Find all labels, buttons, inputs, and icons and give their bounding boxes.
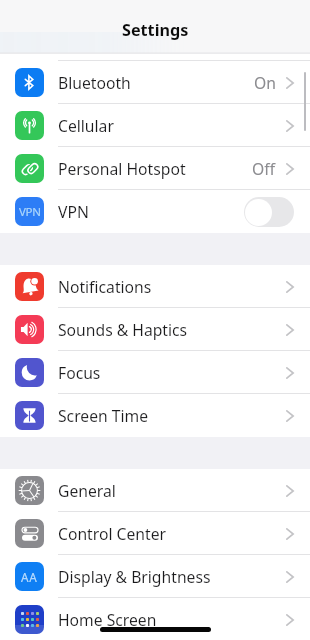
staticText: Settings (122, 19, 189, 41)
button[interactable]: Sounds & Haptics (0, 308, 310, 351)
staticText: Notifications (58, 276, 152, 297)
button[interactable]: VPN (0, 190, 310, 233)
staticText: Home Screen (58, 609, 157, 630)
button[interactable]: General (0, 469, 310, 512)
staticText: Cellular (58, 115, 114, 136)
button[interactable]: AA (0, 555, 310, 598)
staticText: Display & Brightness (58, 566, 211, 587)
button[interactable]: Cellular (0, 104, 310, 147)
staticText: Control Center (58, 523, 166, 544)
staticText: Bluetooth (58, 72, 131, 93)
staticText: VPN (19, 204, 41, 220)
staticText: VPN (58, 201, 89, 222)
button[interactable]: Screen Time (0, 394, 310, 437)
staticText: Off (252, 158, 276, 179)
button[interactable]: Home Screen (0, 598, 310, 640)
staticText: On (254, 72, 276, 93)
staticText: Focus (58, 362, 101, 383)
staticText: Screen Time (58, 405, 149, 426)
staticText: Personal Hotspot (58, 158, 186, 179)
staticText: Sounds & Haptics (58, 319, 188, 340)
staticText: AA (21, 569, 38, 585)
button[interactable]: Focus (0, 351, 310, 394)
button[interactable]: Bluetooth (0, 61, 310, 104)
button[interactable]: Notifications (0, 265, 310, 308)
button[interactable]: VPN toggle (244, 197, 294, 227)
button[interactable]: Control Center (0, 512, 310, 555)
button[interactable]: Personal Hotspot (0, 147, 310, 190)
staticText: General (58, 480, 116, 501)
